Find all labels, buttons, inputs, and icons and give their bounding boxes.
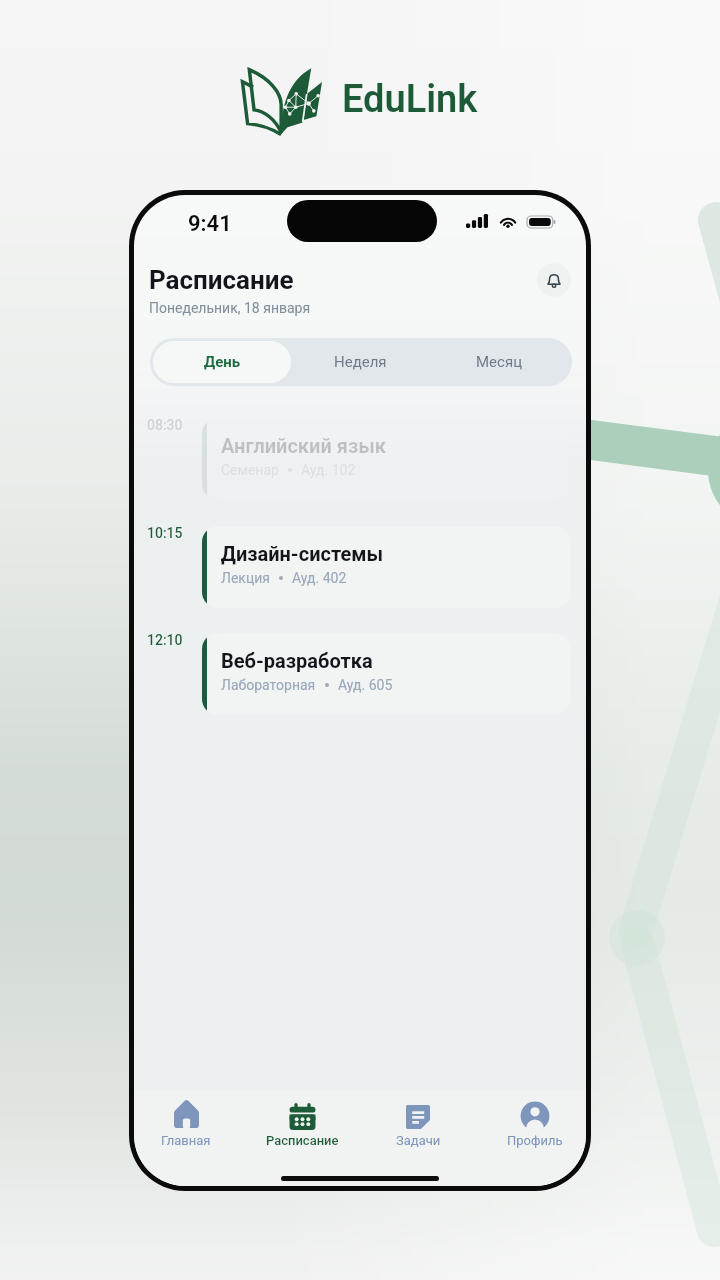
staticText: EduLink (342, 77, 478, 122)
button[interactable]: Расписание (258, 1090, 346, 1152)
button[interactable]: Веб-разработка (202, 633, 570, 715)
staticText: 10:15 (147, 525, 183, 541)
staticText: Понедельник, 18 января (149, 300, 311, 316)
button[interactable]: Задачи (374, 1090, 462, 1152)
staticText: Ауд. 605 (338, 677, 393, 693)
staticText: Веб-разработка (221, 649, 373, 672)
staticText: 08:30 (147, 418, 183, 433)
button[interactable]: Профиль (491, 1090, 579, 1152)
staticText: Главная (161, 1133, 211, 1148)
staticText: 12:10 (147, 632, 183, 648)
button[interactable]: Неделя (291, 341, 430, 383)
staticText: Семенар (221, 462, 279, 478)
staticText: Задачи (396, 1133, 441, 1148)
staticText: Неделя (334, 353, 387, 371)
button[interactable]: Месяц (430, 341, 569, 383)
staticText: Профиль (507, 1133, 563, 1148)
staticText: Лекция (221, 570, 270, 586)
button[interactable]: День (153, 341, 291, 383)
button[interactable]: Notifications (537, 263, 571, 297)
staticText: Лабораторная (221, 677, 316, 693)
staticText: Ауд. 102 (301, 462, 356, 478)
staticText: Расписание (266, 1133, 339, 1148)
button[interactable]: Дизайн-системы (202, 526, 570, 608)
button[interactable]: Английский язык (202, 418, 570, 500)
staticText: День (204, 353, 241, 371)
staticText: Расписание (149, 265, 294, 295)
staticText: 9:41 (188, 211, 232, 237)
staticText: Месяц (476, 353, 523, 371)
staticText: Ауд. 402 (292, 570, 347, 586)
staticText: Английский язык (221, 434, 387, 457)
button[interactable]: Главная (142, 1090, 230, 1152)
staticText: Дизайн-системы (221, 542, 383, 565)
